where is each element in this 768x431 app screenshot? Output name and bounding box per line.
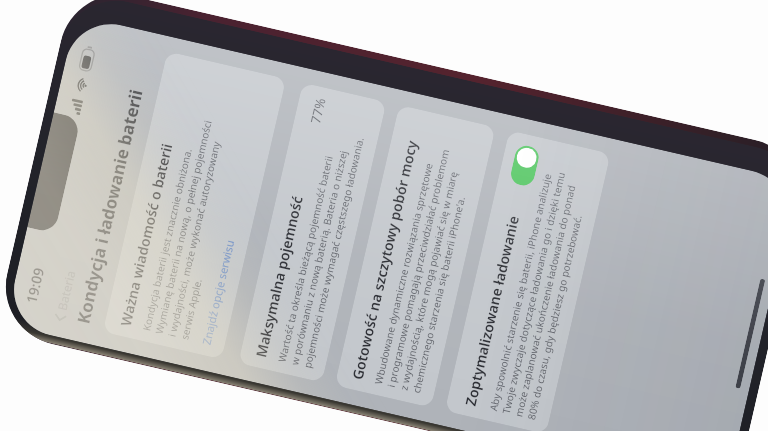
staticText: Zoptymalizowane ładowanie xyxy=(461,213,523,408)
staticText: Wbudowane dynamiczne rozwiązania sprzęto… xyxy=(371,145,478,394)
staticText: Wartość ta określa bieżącą pojemność bat… xyxy=(275,129,367,369)
button[interactable]: Bateria xyxy=(47,264,82,327)
button[interactable]: Znajdź opcje serwisu xyxy=(199,237,237,346)
staticText: Maksymalna pojemność xyxy=(251,194,307,359)
staticText: Ważna wiadomość o baterii xyxy=(116,141,176,328)
staticText: Bateria xyxy=(54,268,78,312)
staticText: 19:09 xyxy=(21,266,48,305)
staticText: Aby spowolnić starzenie się baterii, iPh… xyxy=(486,167,593,421)
staticText: Kondycja baterii jest znacznie obniżona.… xyxy=(139,116,240,341)
staticText: Kondycja i ładowanie baterii xyxy=(71,87,148,326)
staticText: Gotowość na szczytowy pobór mocy xyxy=(348,138,421,381)
staticText: 77% xyxy=(306,96,330,125)
staticText: Znajdź opcje serwisu xyxy=(199,237,237,346)
button[interactable]: Zoptymalizowane ładowanie xyxy=(509,143,541,188)
